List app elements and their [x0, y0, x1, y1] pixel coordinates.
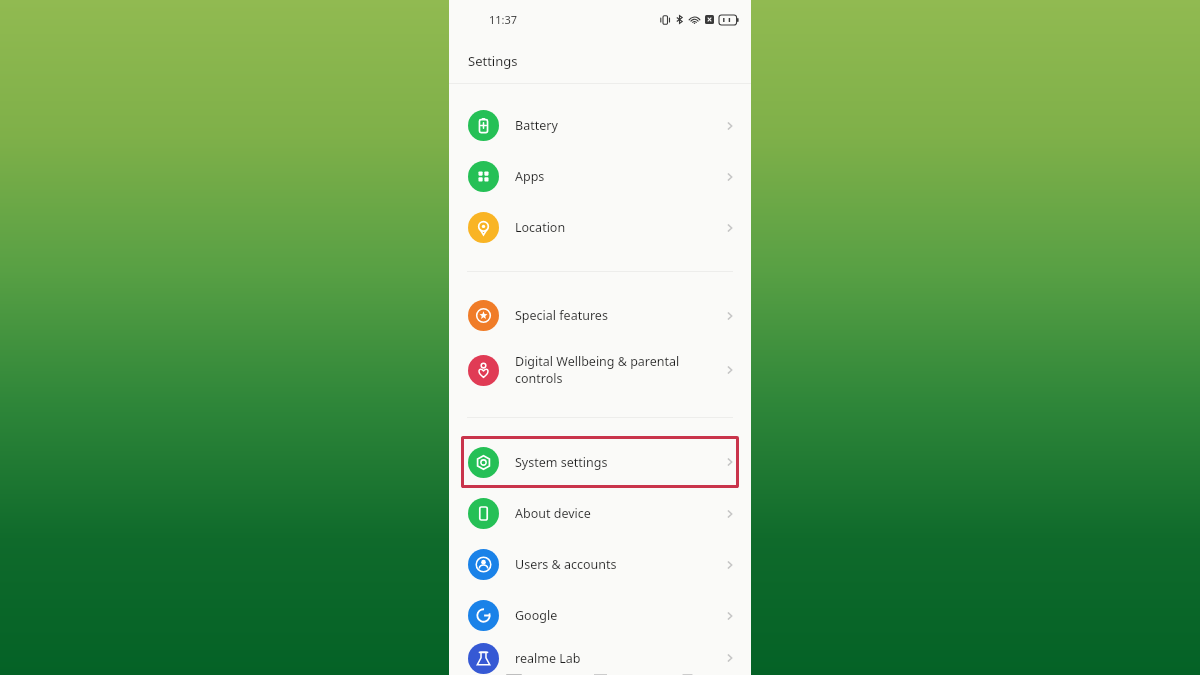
button[interactable]: Digital Wellbeing & parental controls [449, 341, 751, 399]
staticText: Users & accounts [515, 556, 709, 573]
staticText: 11:37 [489, 12, 518, 27]
staticText: Location [515, 219, 709, 236]
button[interactable]: System settings [461, 436, 739, 488]
button[interactable]: Special features [449, 290, 751, 341]
button[interactable]: Battery [449, 100, 751, 151]
button[interactable]: Users & accounts [449, 539, 751, 590]
staticText: About device [515, 505, 709, 522]
staticText: Battery [515, 117, 709, 134]
button[interactable]: Location [449, 202, 751, 253]
button[interactable]: realme Lab [449, 641, 751, 675]
staticText: Apps [515, 168, 709, 185]
staticText: Google [515, 607, 709, 624]
button[interactable]: Apps [449, 151, 751, 202]
staticText: realme Lab [515, 650, 709, 667]
button[interactable]: Google [449, 590, 751, 641]
staticText: Digital Wellbeing & parental controls [515, 353, 709, 387]
button[interactable]: About device [449, 488, 751, 539]
staticText: Special features [515, 307, 709, 324]
staticText: System settings [515, 454, 723, 471]
staticText: Settings [468, 52, 518, 70]
